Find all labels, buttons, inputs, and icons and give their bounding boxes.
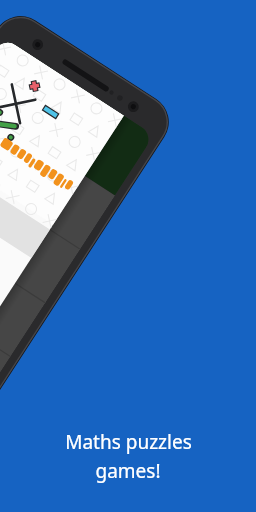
button[interactable]: Home <box>4 98 76 120</box>
staticText: Maths puzzles <box>65 429 192 455</box>
button[interactable]: Help <box>0 178 46 200</box>
staticText: games! <box>95 458 161 484</box>
button[interactable]: Feedback <box>0 142 62 164</box>
